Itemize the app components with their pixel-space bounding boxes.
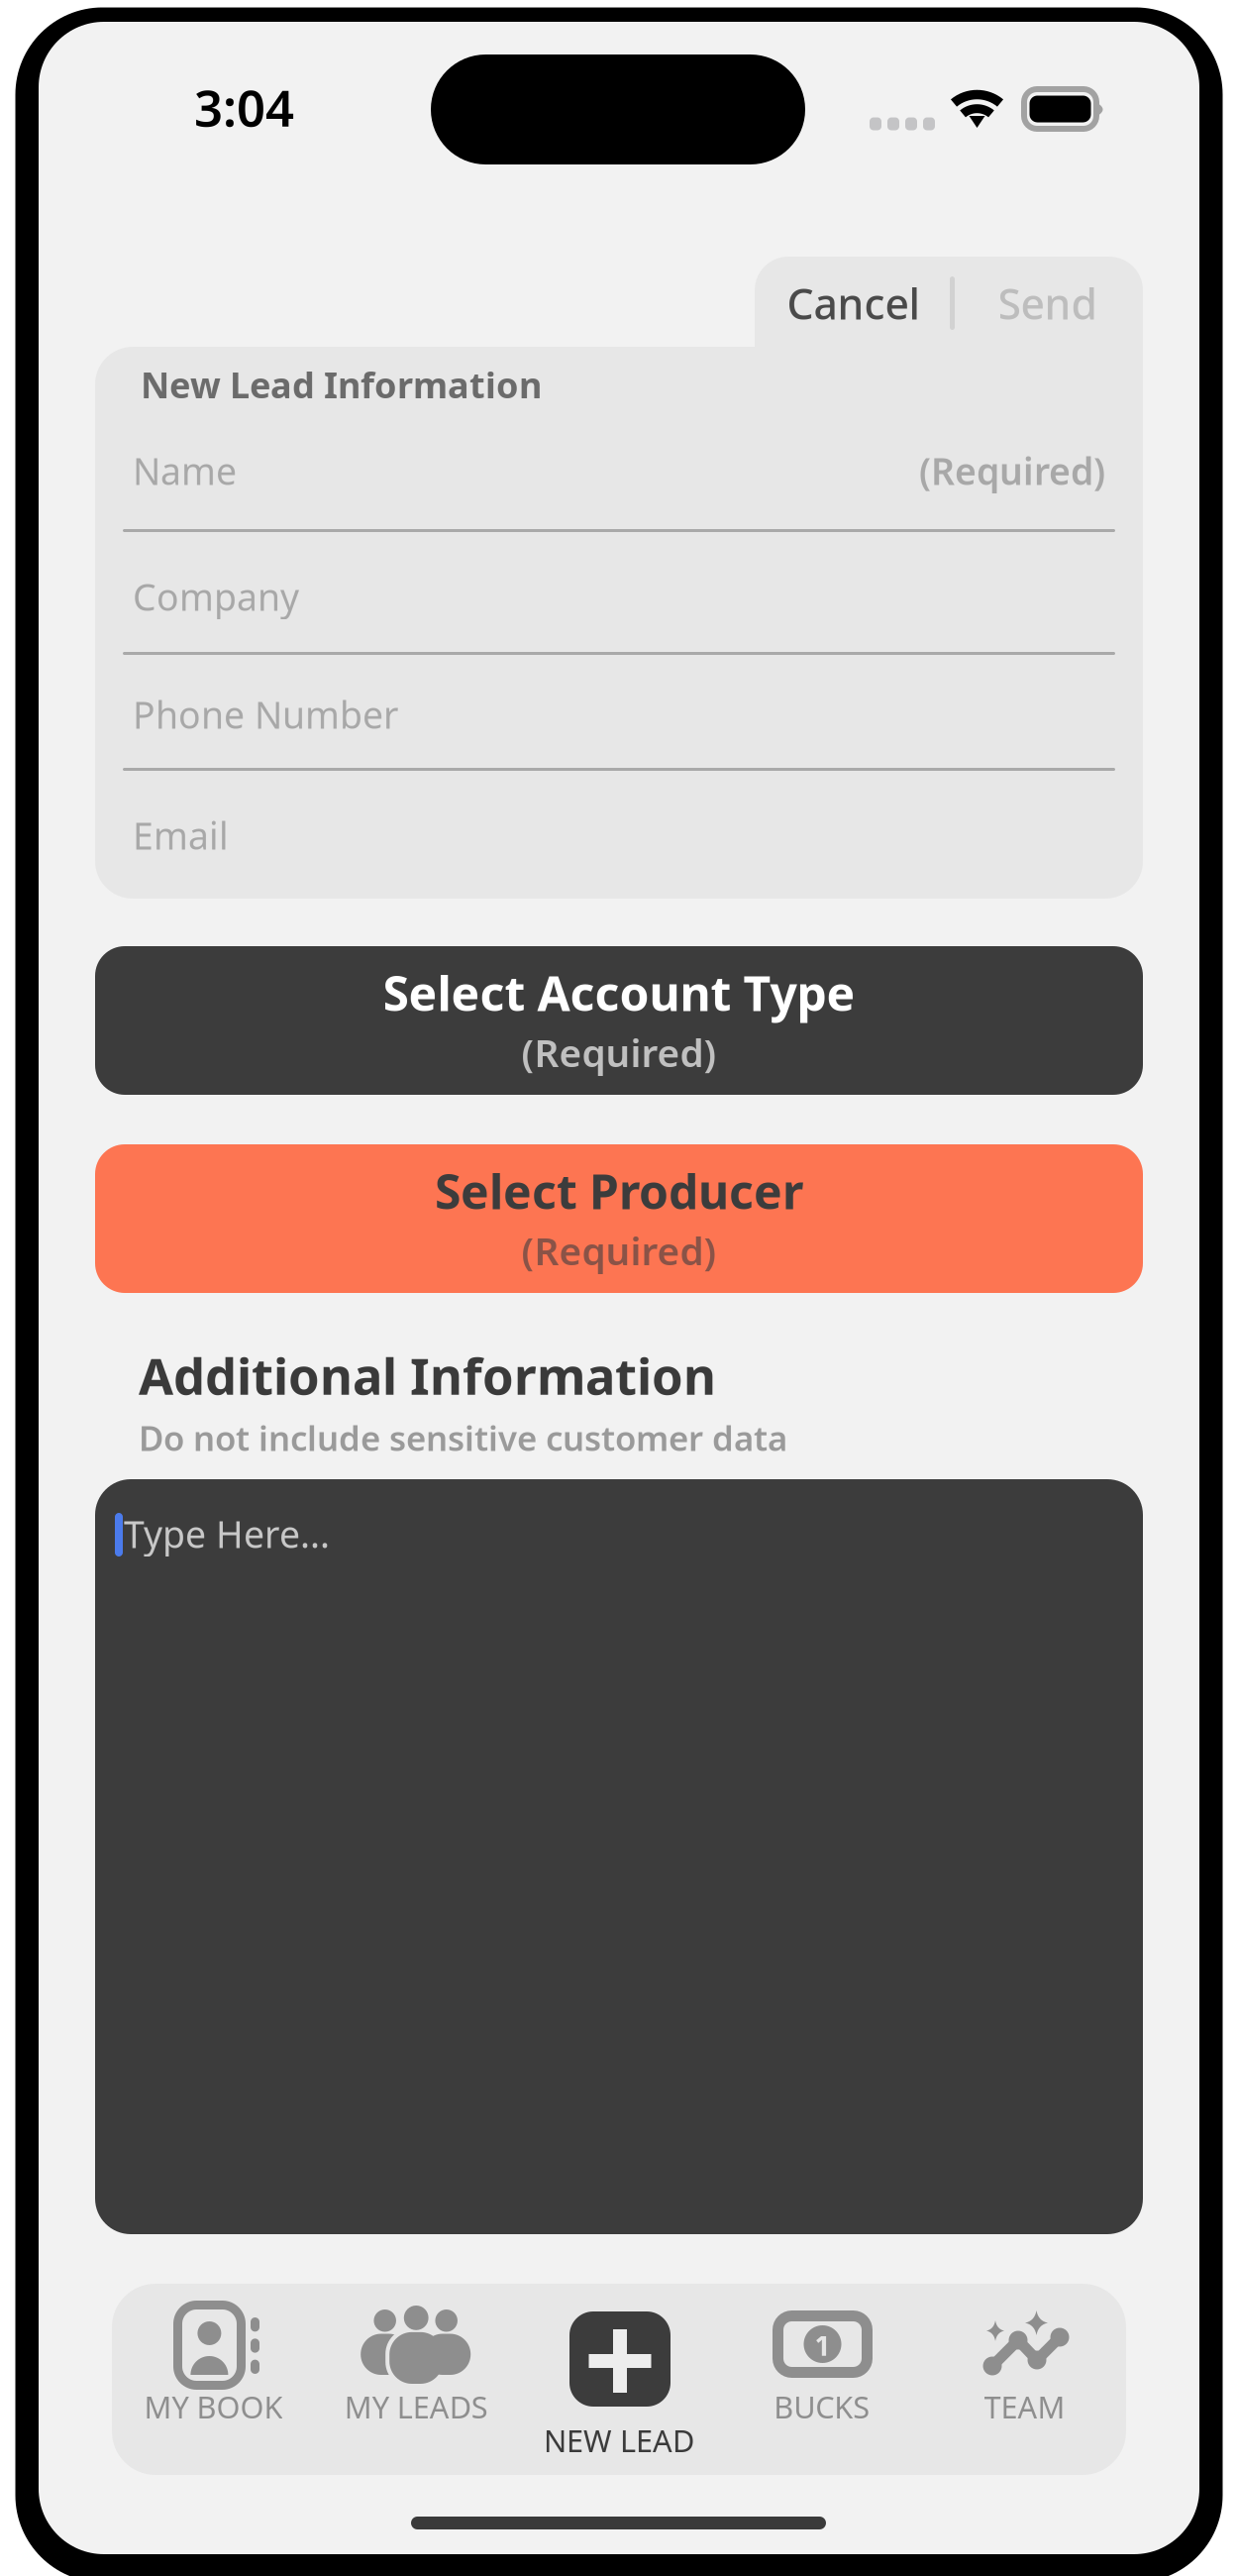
staticText: 3:04 <box>194 74 294 140</box>
staticText: 1 <box>815 2327 830 2364</box>
staticText: Send <box>998 275 1097 331</box>
button[interactable]: 1 <box>720 2284 923 2475</box>
staticText: Select Account Type <box>383 961 855 1024</box>
staticText: (Required) <box>521 1027 717 1078</box>
button[interactable]: Type Here... <box>95 1479 1143 2234</box>
button[interactable]: Email <box>95 771 1143 896</box>
staticText: TEAM <box>984 2386 1065 2427</box>
button[interactable]: NEW LEAD <box>518 2284 720 2475</box>
staticText: MY LEADS <box>344 2386 488 2427</box>
button[interactable]: Send <box>952 248 1143 359</box>
staticText: NEW LEAD <box>544 2420 694 2460</box>
button[interactable]: MY LEADS <box>315 2284 518 2475</box>
staticText: Cancel <box>787 275 921 331</box>
button[interactable]: MY BOOK <box>112 2284 315 2475</box>
button[interactable]: Select Producer <box>95 1144 1143 1293</box>
staticText: Email <box>133 811 229 860</box>
staticText: (Required) <box>919 446 1105 495</box>
button[interactable]: Cancel <box>755 248 953 359</box>
staticText: Type Here... <box>124 1509 330 1558</box>
staticText: MY BOOK <box>144 2386 283 2427</box>
button[interactable]: Select Account Type <box>95 946 1143 1095</box>
button[interactable]: Company <box>95 532 1143 652</box>
staticText: (Required) <box>521 1225 717 1276</box>
staticText: New Lead Information <box>141 361 542 408</box>
staticText: Phone Number <box>133 690 398 739</box>
staticText: Company <box>133 572 299 621</box>
staticText: Select Producer <box>435 1159 803 1222</box>
button[interactable]: Name <box>95 408 1143 529</box>
staticText: Additional Information <box>139 1342 716 1409</box>
staticText: Name <box>133 446 237 495</box>
button[interactable]: TEAM <box>923 2284 1126 2475</box>
staticText: BUCKS <box>774 2386 870 2427</box>
staticText: Do not include sensitive customer data <box>139 1415 787 1460</box>
button[interactable]: Phone Number <box>95 655 1143 768</box>
